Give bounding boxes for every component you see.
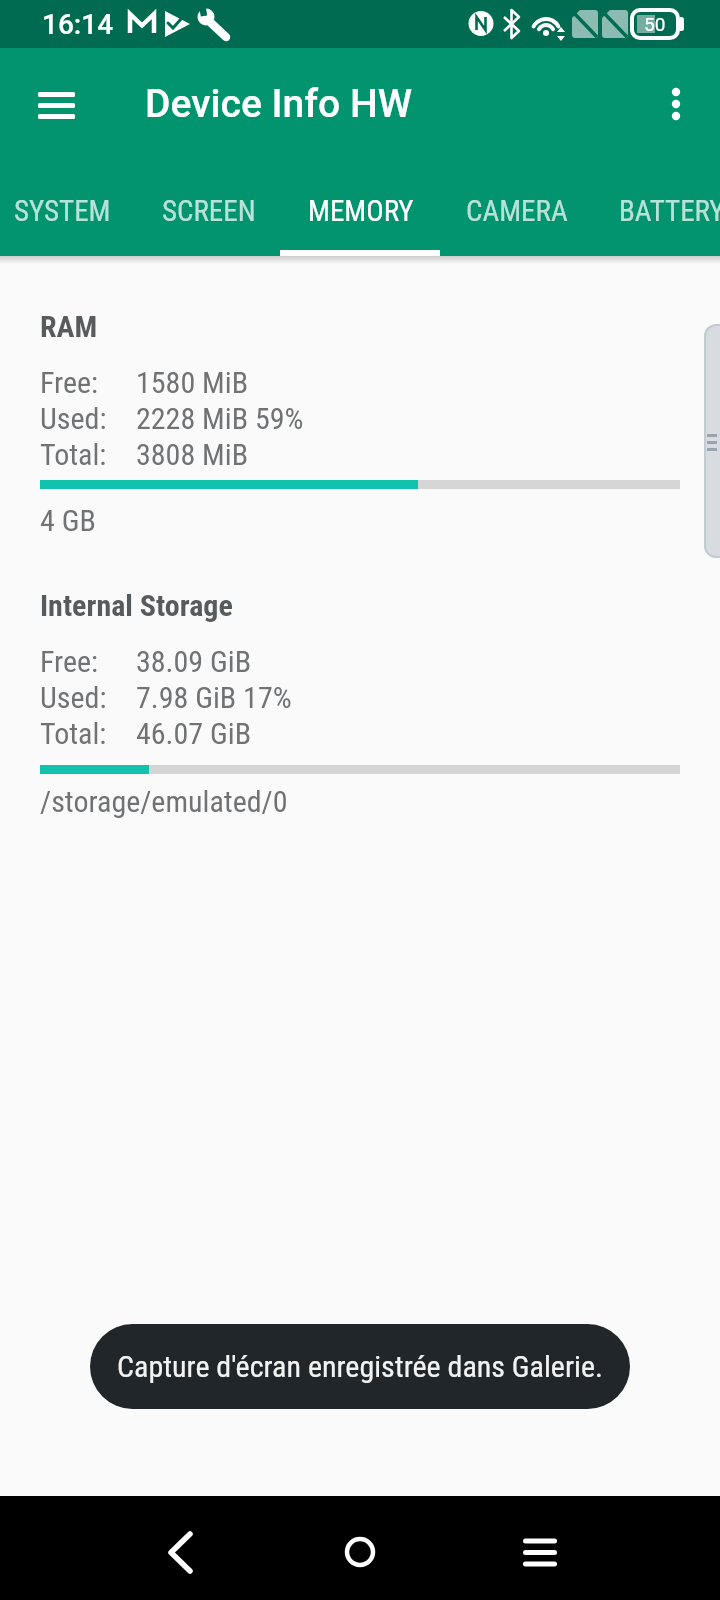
staticText: Total:	[40, 716, 107, 751]
staticText: BATTERY	[619, 194, 720, 228]
staticText: 38.09 GiB	[136, 644, 252, 679]
staticText: 16:14	[42, 8, 114, 41]
staticText: SYSTEM	[14, 194, 111, 228]
button[interactable]: SCREEN	[131, 166, 287, 256]
button[interactable]: BATTERY	[594, 166, 720, 256]
staticText: /storage/emulated/0	[40, 784, 288, 819]
button[interactable]: CAMERA	[439, 166, 595, 256]
staticText: 7.98 GiB 17%	[136, 680, 292, 715]
staticText: 46.07 GiB	[136, 716, 252, 751]
staticText: Internal Storage	[40, 588, 233, 623]
button[interactable]: MEMORY	[283, 166, 439, 256]
staticText: Used:	[40, 401, 107, 436]
staticText: Free:	[40, 365, 99, 400]
staticText: RAM	[40, 309, 98, 344]
button[interactable]	[22, 76, 92, 132]
staticText: 2228 MiB 59%	[136, 401, 304, 436]
staticText: Free:	[40, 644, 99, 679]
staticText: 4 GB	[40, 503, 96, 538]
staticText: Used:	[40, 680, 107, 715]
button[interactable]	[312, 1504, 408, 1600]
staticText: 1580 MiB	[136, 365, 249, 400]
staticText: Capture d'écran enregistrée dans Galerie…	[117, 1349, 603, 1384]
staticText: Total:	[40, 437, 107, 472]
button[interactable]: SYSTEM	[0, 166, 140, 256]
staticText: MEMORY	[308, 194, 414, 228]
staticText: 3808 MiB	[136, 437, 249, 472]
button[interactable]	[132, 1504, 228, 1600]
staticText: Device Info HW	[145, 81, 413, 127]
staticText: SCREEN	[162, 194, 256, 228]
button[interactable]	[492, 1504, 588, 1600]
staticText: CAMERA	[466, 194, 568, 228]
staticText: 50	[644, 13, 666, 35]
button[interactable]	[652, 80, 700, 128]
